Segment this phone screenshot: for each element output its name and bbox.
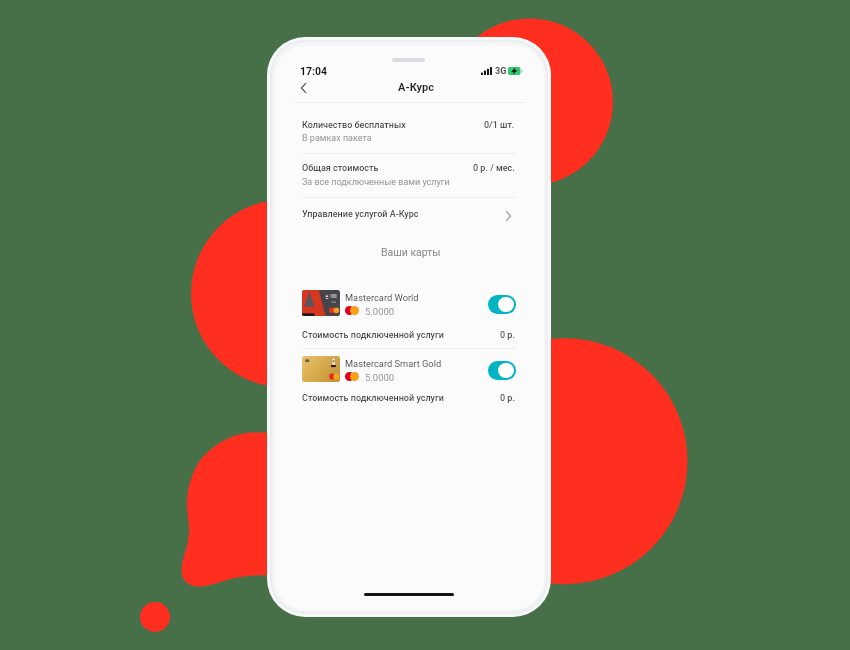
staticText: Стоимость подключенной услуги	[302, 330, 444, 341]
staticText: Количество бесплатных	[302, 120, 406, 131]
button[interactable]	[275, 386, 544, 411]
button[interactable]	[275, 323, 544, 348]
button[interactable]: Toggle service	[488, 361, 516, 380]
staticText: Общая стоимость	[302, 163, 379, 174]
staticText: А-Курс	[398, 81, 435, 94]
staticText: 0 р.	[500, 393, 515, 404]
button[interactable]	[275, 198, 544, 233]
staticText: Mastercard Smart Gold	[345, 358, 442, 369]
button[interactable]	[275, 154, 544, 197]
button[interactable]: Back	[291, 76, 315, 100]
staticText: 5.0000	[365, 306, 395, 317]
staticText: За все подключенные вами услуги	[302, 177, 450, 188]
staticText: 3G	[495, 66, 507, 77]
button[interactable]: Toggle service	[488, 295, 516, 314]
staticText: В рамках пакета	[302, 133, 372, 144]
staticText: Управление услугой А-Курс	[302, 209, 419, 220]
staticText: 0 р.	[500, 330, 515, 341]
staticText: Mastercard World	[345, 292, 419, 303]
staticText: 0/1 шт.	[484, 120, 515, 131]
staticText: 5.0000	[365, 372, 395, 383]
button[interactable]	[275, 285, 544, 321]
button[interactable]	[275, 351, 544, 387]
staticText: 17:04	[300, 65, 328, 77]
staticText: 0 р. / мес.	[473, 163, 515, 174]
button[interactable]	[275, 102, 544, 153]
staticText: Стоимость подключенной услуги	[302, 393, 444, 404]
staticText: Ваши карты	[381, 246, 441, 258]
